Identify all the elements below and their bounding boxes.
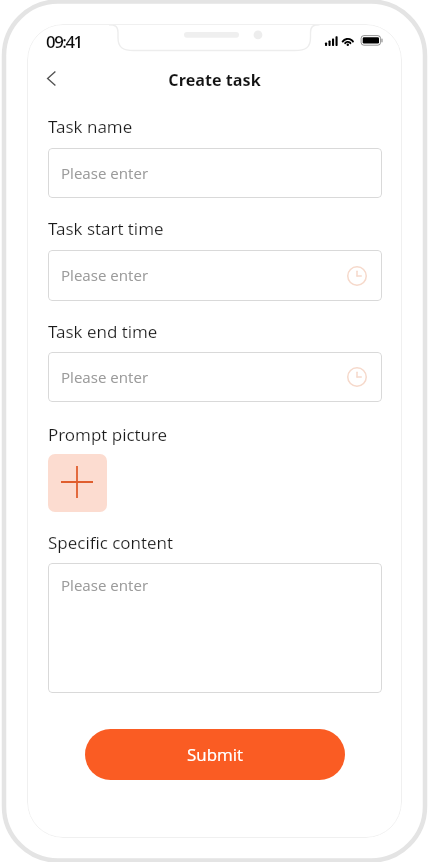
button[interactable]: Please enter bbox=[48, 148, 382, 198]
staticText: Task start time bbox=[48, 217, 164, 240]
staticText: Task name bbox=[48, 115, 133, 138]
staticText: Create task bbox=[27, 69, 402, 91]
button[interactable]: Please enter bbox=[48, 352, 382, 402]
button[interactable]: Back bbox=[31, 59, 69, 97]
staticText: Prompt picture bbox=[48, 423, 168, 446]
staticText: Specific content bbox=[48, 531, 174, 554]
staticText: 09:41 bbox=[46, 30, 82, 53]
staticText: Please enter bbox=[61, 163, 149, 184]
staticText: Submit bbox=[187, 743, 243, 766]
button[interactable]: Please enter bbox=[48, 563, 382, 693]
staticText: Please enter bbox=[61, 265, 149, 286]
button[interactable]: Submit bbox=[85, 729, 345, 780]
button[interactable]: Add picture bbox=[48, 454, 107, 512]
staticText: Please enter bbox=[61, 367, 149, 388]
staticText: Please enter bbox=[61, 575, 149, 596]
staticText: Task end time bbox=[48, 320, 158, 343]
button[interactable]: Please enter bbox=[48, 250, 382, 301]
